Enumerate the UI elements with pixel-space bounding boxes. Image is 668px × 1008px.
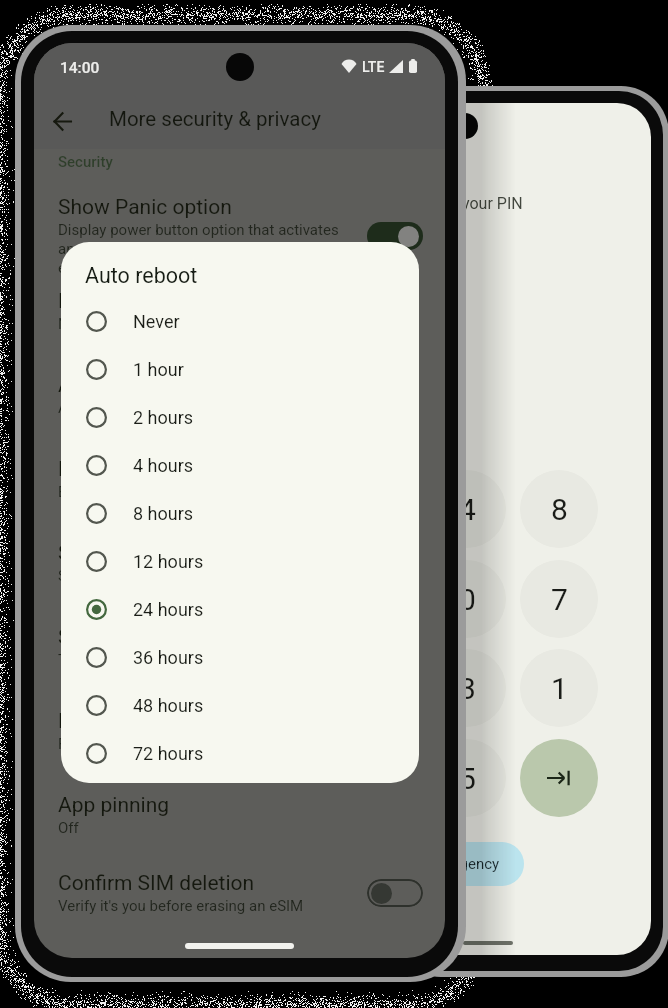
button[interactable]: 72 hours bbox=[61, 729, 419, 777]
button[interactable]: Smart Lock bbox=[58, 625, 423, 669]
staticText: 3 bbox=[459, 671, 476, 706]
button[interactable]: 3 bbox=[428, 649, 506, 727]
staticText: LTE bbox=[362, 59, 385, 73]
staticText: Automatically reboot after 24 hours if u… bbox=[58, 399, 360, 417]
staticText: 8 bbox=[551, 492, 568, 527]
staticText: 36 hours bbox=[133, 647, 204, 668]
button[interactable]: 48 hours bbox=[61, 681, 419, 729]
staticText: Face & Fingerprint Unlock bbox=[58, 735, 229, 753]
button[interactable]: App pinning bbox=[58, 793, 423, 837]
staticText: 4 bbox=[459, 492, 476, 527]
button[interactable]: Auto reboot bbox=[58, 373, 423, 417]
staticText: Enter your PIN bbox=[421, 194, 523, 213]
button[interactable]: Enter bbox=[520, 739, 598, 817]
staticText: Confirm SIM deletion bbox=[58, 871, 255, 896]
staticText: Off bbox=[58, 819, 79, 837]
staticText: Auto reboot bbox=[85, 263, 198, 288]
button[interactable]: 36 hours bbox=[61, 633, 419, 681]
staticText: Smart Lock bbox=[58, 625, 165, 650]
button[interactable]: Screen lock bbox=[58, 541, 423, 585]
staticText: Auto reboot bbox=[58, 373, 168, 398]
button[interactable]: 4 bbox=[428, 470, 506, 548]
button[interactable]: Toggle bbox=[367, 879, 423, 907]
staticText: 48 hours bbox=[133, 695, 204, 716]
button[interactable]: Encryption & credentials bbox=[58, 457, 423, 501]
staticText: Show Panic option bbox=[58, 195, 232, 220]
button[interactable]: 1 hour bbox=[61, 345, 419, 393]
staticText: 7 bbox=[551, 582, 568, 617]
staticText: Security bbox=[58, 153, 113, 171]
button[interactable]: 0 bbox=[428, 560, 506, 638]
staticText: 24 hours bbox=[133, 599, 204, 620]
staticText: Swipe bbox=[58, 567, 99, 585]
button[interactable]: 5 bbox=[428, 739, 506, 817]
button[interactable]: Back bbox=[40, 99, 84, 143]
staticText: 8 hours bbox=[133, 503, 194, 524]
button[interactable]: 2 hours bbox=[61, 393, 419, 441]
staticText: Encryption & credentials bbox=[58, 457, 284, 482]
staticText: More security & privacy bbox=[109, 107, 321, 131]
staticText: Never bbox=[133, 311, 180, 332]
button[interactable]: 8 bbox=[520, 470, 598, 548]
staticText: 2 hours bbox=[133, 407, 194, 428]
button[interactable]: Never bbox=[61, 297, 419, 345]
button[interactable]: 24 hours bbox=[61, 585, 419, 633]
button[interactable]: Confirm SIM deletion bbox=[58, 871, 423, 915]
staticText: 0 bbox=[459, 582, 476, 617]
button[interactable]: Device unlock bbox=[58, 709, 423, 753]
button[interactable]: Emergency bbox=[405, 842, 524, 886]
staticText: Screen lock bbox=[58, 541, 167, 566]
button[interactable]: 4 hours bbox=[61, 441, 419, 489]
staticText: Display power button option that activat… bbox=[58, 221, 355, 277]
button[interactable]: 8 hours bbox=[61, 489, 419, 537]
button[interactable]: 12 hours bbox=[61, 537, 419, 585]
button[interactable]: Show Panic option bbox=[58, 195, 423, 277]
staticText: 12 hours bbox=[133, 551, 204, 572]
staticText: 1 hour bbox=[133, 359, 184, 380]
staticText: 14:00 bbox=[60, 59, 100, 77]
staticText: 5 bbox=[459, 761, 476, 796]
button[interactable]: 1 bbox=[520, 649, 598, 727]
staticText: Verify it's you before erasing an eSIM bbox=[58, 897, 304, 915]
staticText: 1 bbox=[551, 671, 568, 706]
staticText: Encrypted bbox=[58, 483, 125, 501]
staticText: 4 hours bbox=[133, 455, 194, 476]
staticText: Device admin apps bbox=[58, 289, 235, 314]
button[interactable]: Toggle bbox=[367, 222, 423, 250]
staticText: No active apps bbox=[58, 315, 158, 333]
staticText: Emergency bbox=[425, 855, 500, 873]
staticText: App pinning bbox=[58, 793, 170, 818]
staticText: To use, first set a screen lock bbox=[58, 651, 252, 669]
button[interactable]: Device admin apps bbox=[58, 289, 423, 333]
staticText: Device unlock bbox=[58, 709, 188, 734]
staticText: 72 hours bbox=[133, 743, 204, 764]
button[interactable]: 7 bbox=[520, 560, 598, 638]
